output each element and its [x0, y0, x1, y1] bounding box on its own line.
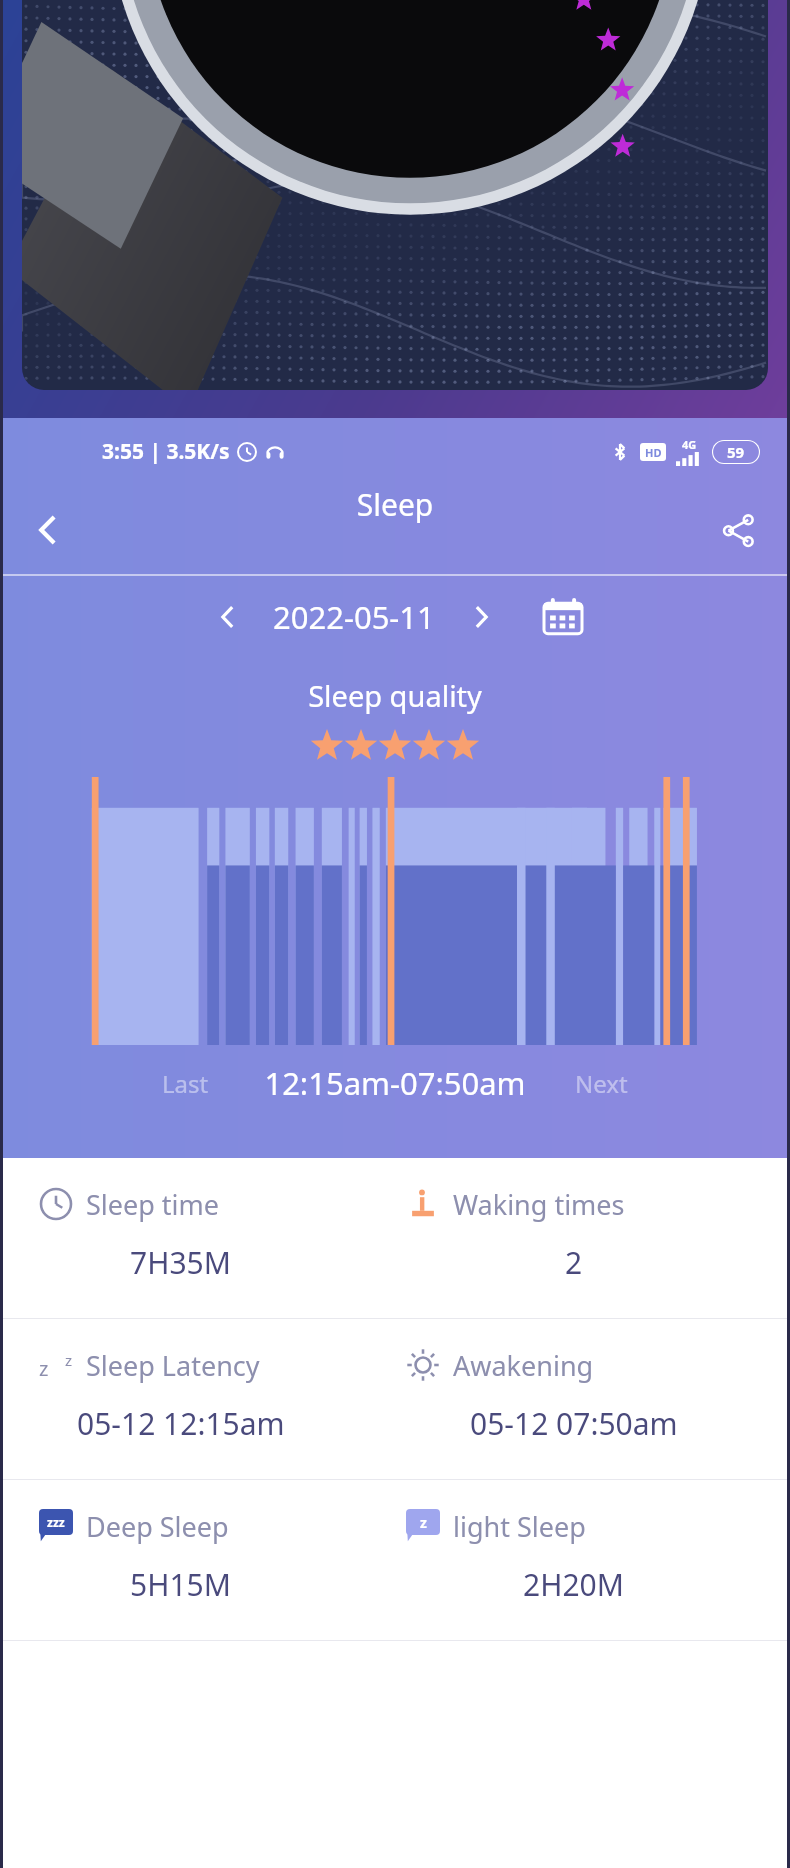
button[interactable]: Awakening: [395, 1319, 788, 1479]
staticText: 05-12 12:15am: [77, 1403, 285, 1444]
button[interactable]: Last: [162, 1067, 209, 1100]
button[interactable]: Previous day: [199, 589, 255, 645]
staticText: z: [420, 1513, 427, 1532]
button[interactable]: z: [2, 1319, 395, 1479]
staticText: z: [39, 1355, 49, 1382]
staticText: z: [65, 1350, 73, 1370]
staticText: zzz: [47, 1514, 65, 1530]
staticText: Deep Sleep: [86, 1508, 229, 1545]
staticText: Sleep: [2, 484, 788, 525]
button[interactable]: Waking times: [395, 1158, 788, 1318]
button[interactable]: z: [395, 1480, 788, 1640]
staticText: HD: [645, 445, 662, 460]
staticText: light Sleep: [453, 1508, 586, 1545]
button[interactable]: Next: [575, 1067, 628, 1100]
staticText: 59: [727, 442, 745, 462]
staticText: Sleep time: [86, 1186, 220, 1223]
staticText: 2H20M: [523, 1564, 624, 1605]
staticText: 3:55 | 3.5K/s: [102, 437, 230, 466]
staticText: 12:15am-07:50am: [2, 1062, 788, 1104]
staticText: Sleep quality: [2, 676, 788, 715]
staticText: 7H35M: [130, 1242, 231, 1283]
staticText: Awakening: [453, 1347, 594, 1384]
staticText: 5H15M: [130, 1564, 231, 1605]
button[interactable]: Calendar: [535, 589, 591, 645]
button[interactable]: Back: [16, 498, 80, 562]
button[interactable]: zzz: [2, 1480, 395, 1640]
button[interactable]: Sleep time: [2, 1158, 395, 1318]
staticText: Waking times: [453, 1186, 625, 1223]
staticText: 2: [565, 1242, 583, 1283]
staticText: 2022-05-11: [273, 596, 435, 638]
staticText: 4G: [682, 437, 697, 452]
staticText: 05-12 07:50am: [470, 1403, 678, 1444]
button[interactable]: Share: [706, 498, 770, 562]
staticText: Sleep Latency: [86, 1347, 260, 1384]
button[interactable]: Next day: [453, 589, 509, 645]
